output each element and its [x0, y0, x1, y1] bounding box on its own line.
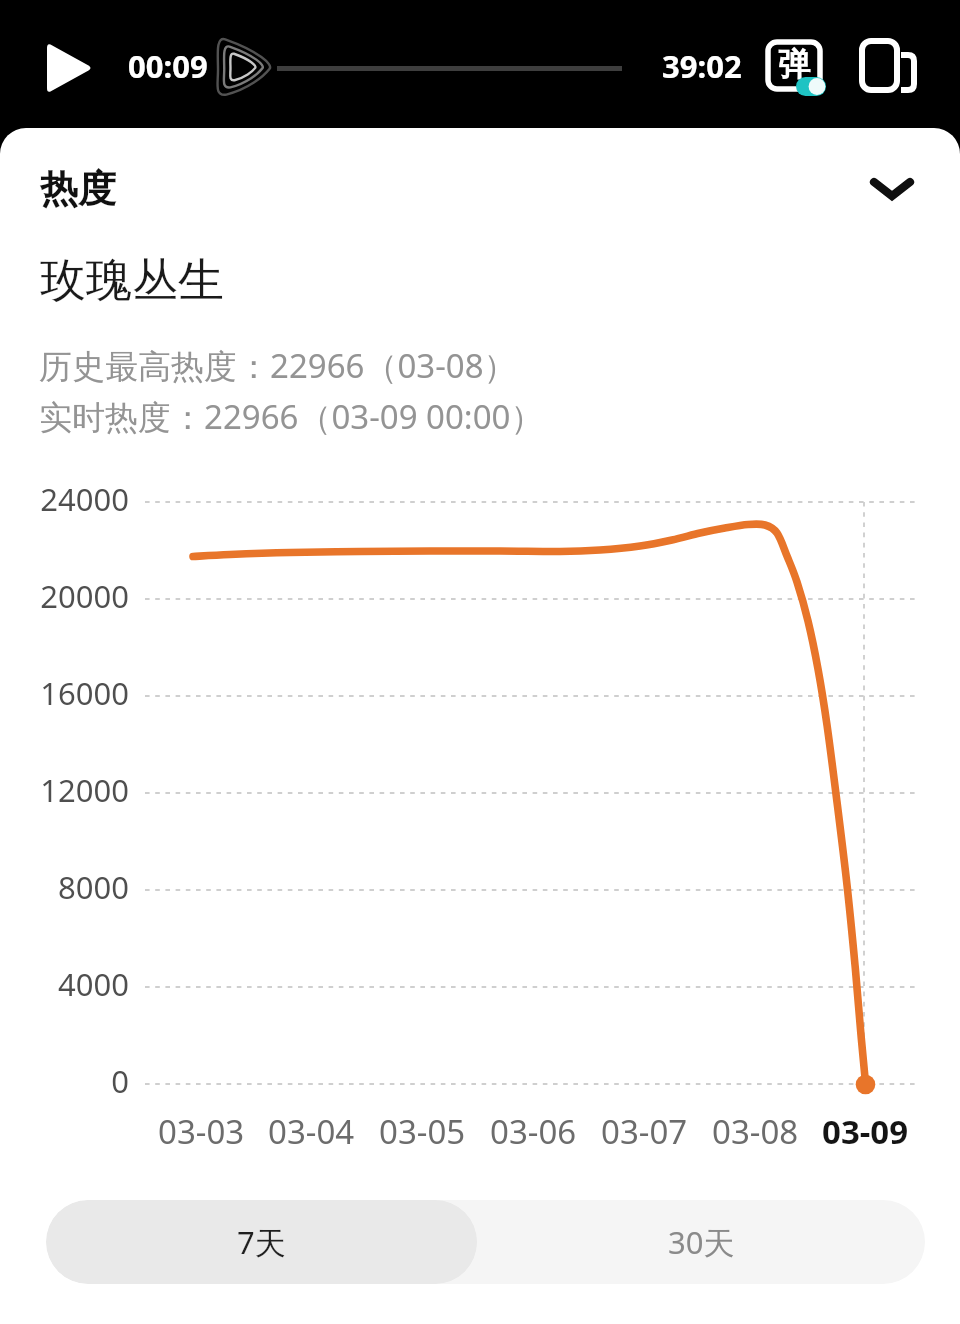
- staticText: 弹: [778, 44, 810, 84]
- staticText: 03-06: [490, 1109, 577, 1154]
- button[interactable]: 7天: [46, 1200, 477, 1284]
- staticText: 16000: [40, 672, 129, 714]
- button[interactable]: Picture in picture: [856, 36, 922, 102]
- button[interactable]: 热度: [0, 150, 960, 236]
- staticText: 03-04: [268, 1109, 355, 1154]
- staticText: 03-09: [822, 1109, 909, 1154]
- staticText: 历史最高热度：22966（03-08）: [39, 343, 517, 388]
- button[interactable]: Collapse: [859, 156, 925, 222]
- staticText: 00:09: [128, 45, 208, 87]
- button[interactable]: 30天: [477, 1200, 925, 1284]
- button[interactable]: Play: [34, 30, 104, 100]
- staticText: 4000: [58, 963, 129, 1005]
- staticText: 实时热度：22966（03-09 00:00）: [39, 394, 544, 439]
- staticText: 03-05: [379, 1109, 466, 1154]
- staticText: 03-03: [158, 1109, 245, 1154]
- staticText: 30天: [668, 1221, 735, 1263]
- staticText: 39:02: [662, 45, 742, 87]
- staticText: 玫瑰丛生: [40, 252, 224, 310]
- staticText: 7天: [237, 1221, 286, 1263]
- staticText: 20000: [40, 575, 129, 617]
- staticText: 0: [111, 1060, 129, 1102]
- staticText: 03-08: [712, 1109, 799, 1154]
- staticText: 12000: [40, 769, 129, 811]
- staticText: 24000: [40, 478, 129, 520]
- button[interactable]: Seek: [210, 30, 280, 100]
- staticText: 03-07: [601, 1109, 688, 1154]
- button[interactable]: Danmaku: [762, 36, 830, 104]
- staticText: 8000: [58, 866, 129, 908]
- staticText: 热度: [40, 165, 116, 213]
